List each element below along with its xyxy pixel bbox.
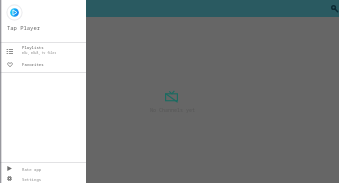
button[interactable]: Search [324,1,339,16]
staticText: Playlists [22,45,44,50]
staticText: m3u, m3u8, tv files [22,51,57,55]
staticText: Rate app [22,167,42,172]
button[interactable]: Rate app [0,163,86,173]
button[interactable]: Settings [0,173,86,183]
staticText: Favorites [22,62,44,67]
staticText: Settings [22,177,42,182]
staticText: Tap Player [7,24,41,31]
staticText: No Channels yet [150,107,196,114]
button[interactable]: Playlists [0,43,86,58]
button[interactable]: Favorites [0,58,86,73]
